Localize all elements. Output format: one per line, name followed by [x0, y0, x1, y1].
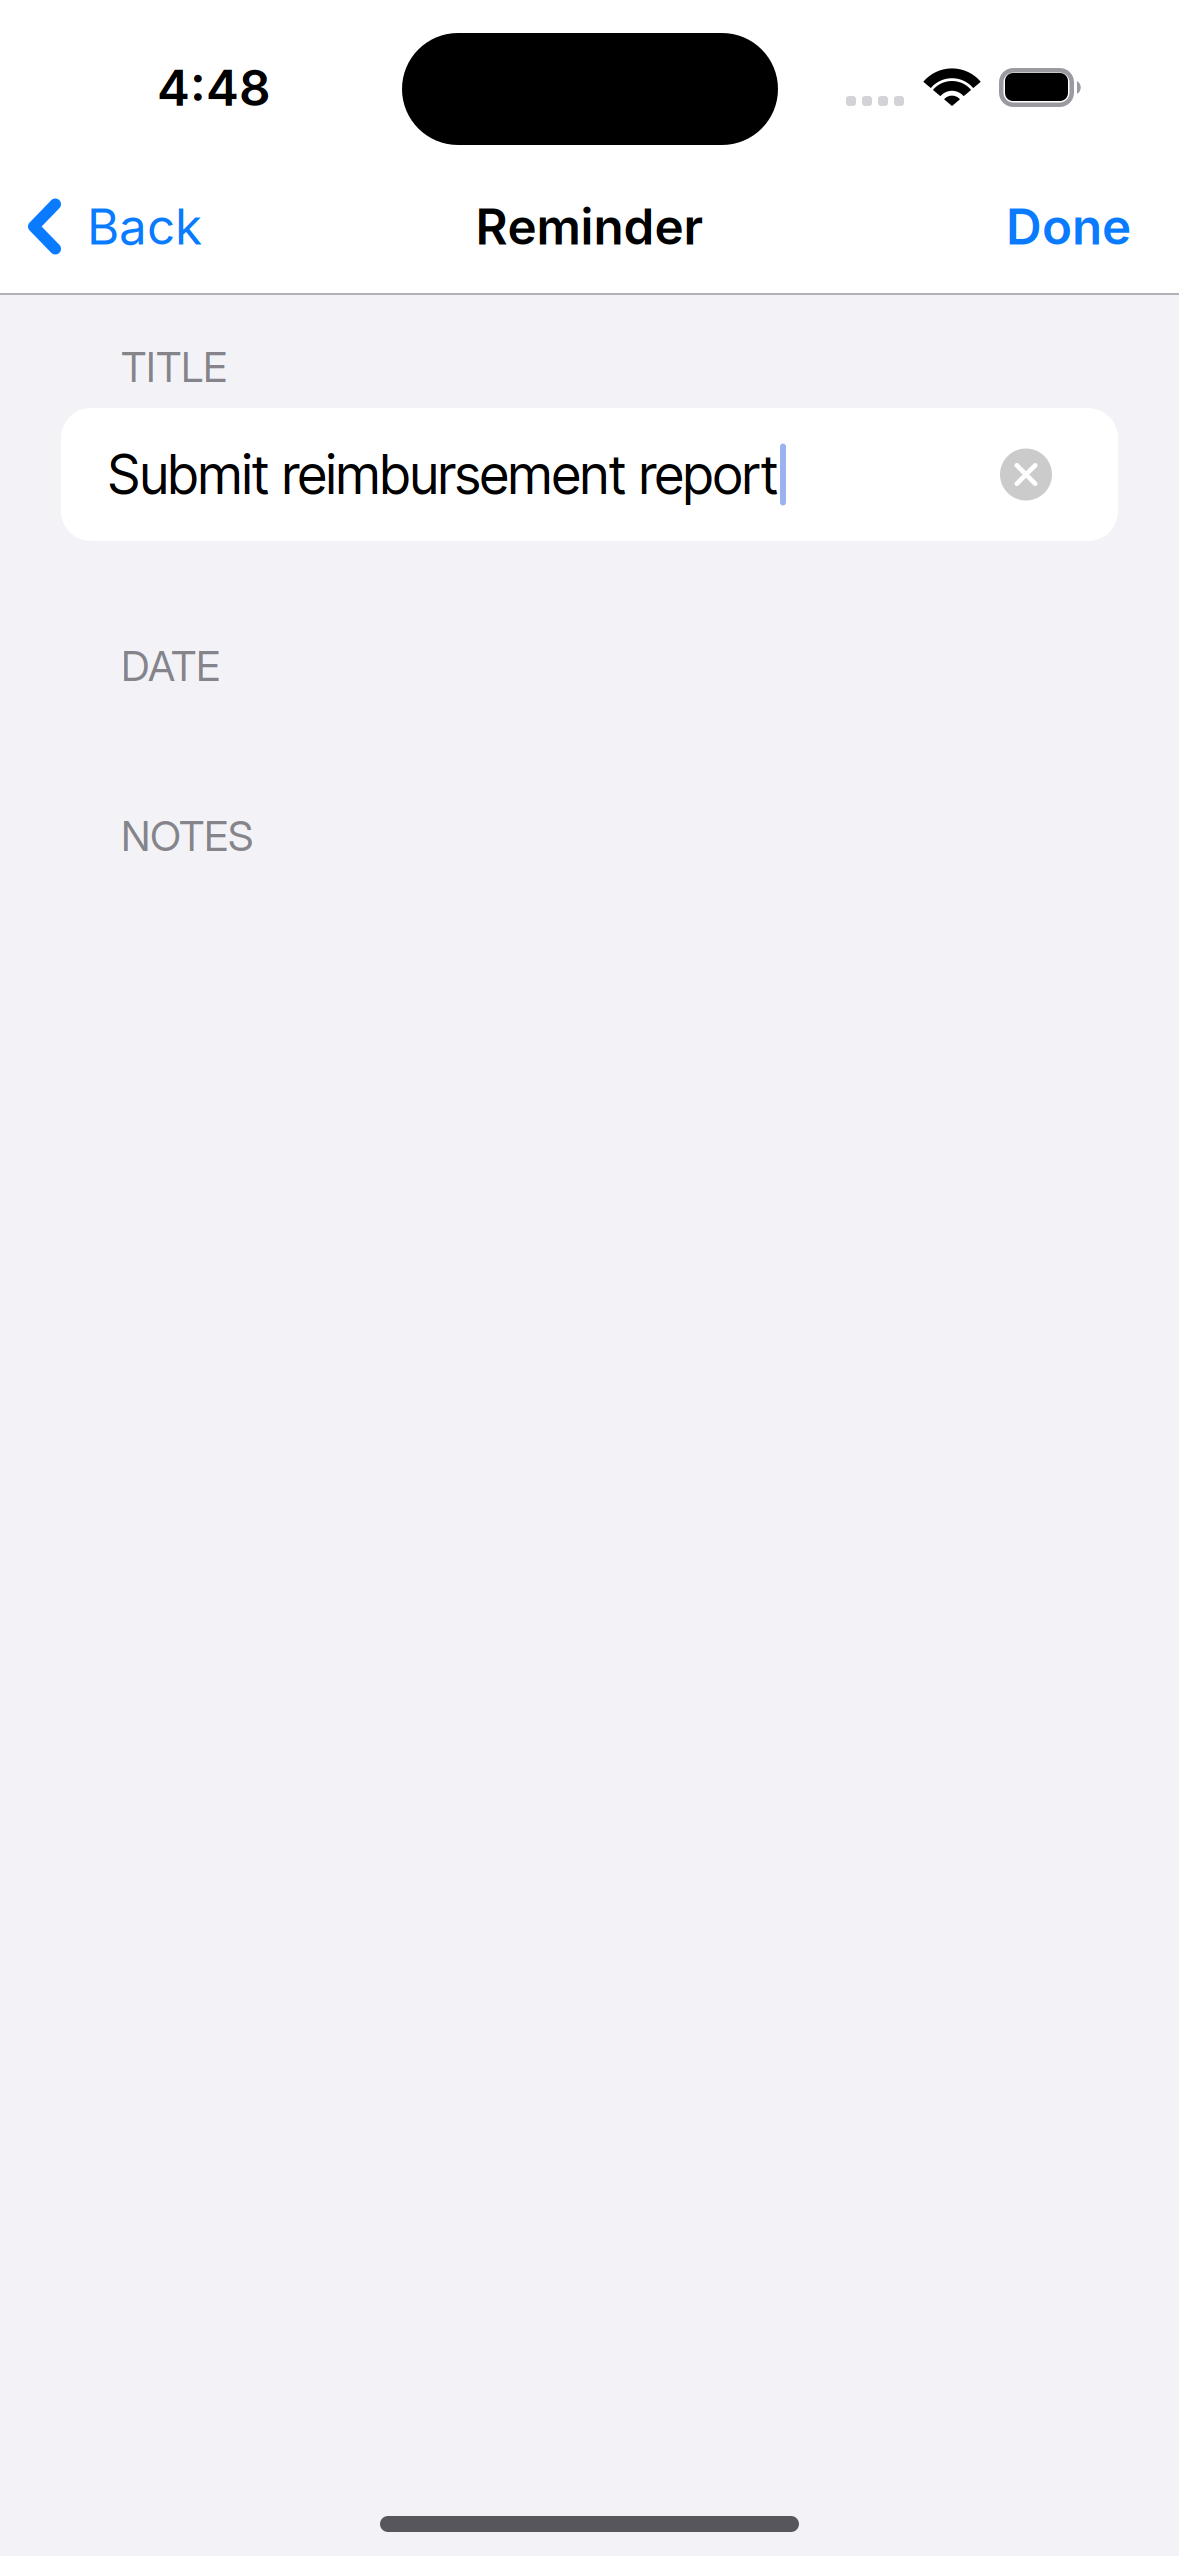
staticText: TITLE	[121, 342, 227, 392]
navigationBar: Reminder	[0, 160, 1179, 293]
staticText: 4:48	[157, 58, 271, 118]
staticText: Reminder	[475, 197, 703, 256]
button[interactable]: Clear text	[983, 431, 1069, 517]
staticText: Submit reimbursement report	[108, 442, 778, 507]
button[interactable]: Done	[970, 177, 1179, 276]
staticText: DATE	[121, 641, 220, 691]
button[interactable]: Submit reimbursement report	[0, 408, 1179, 541]
staticText: Back	[87, 197, 202, 256]
staticText: Done	[1006, 197, 1131, 256]
button[interactable]: Back	[0, 177, 226, 276]
staticText: NOTES	[121, 811, 253, 861]
